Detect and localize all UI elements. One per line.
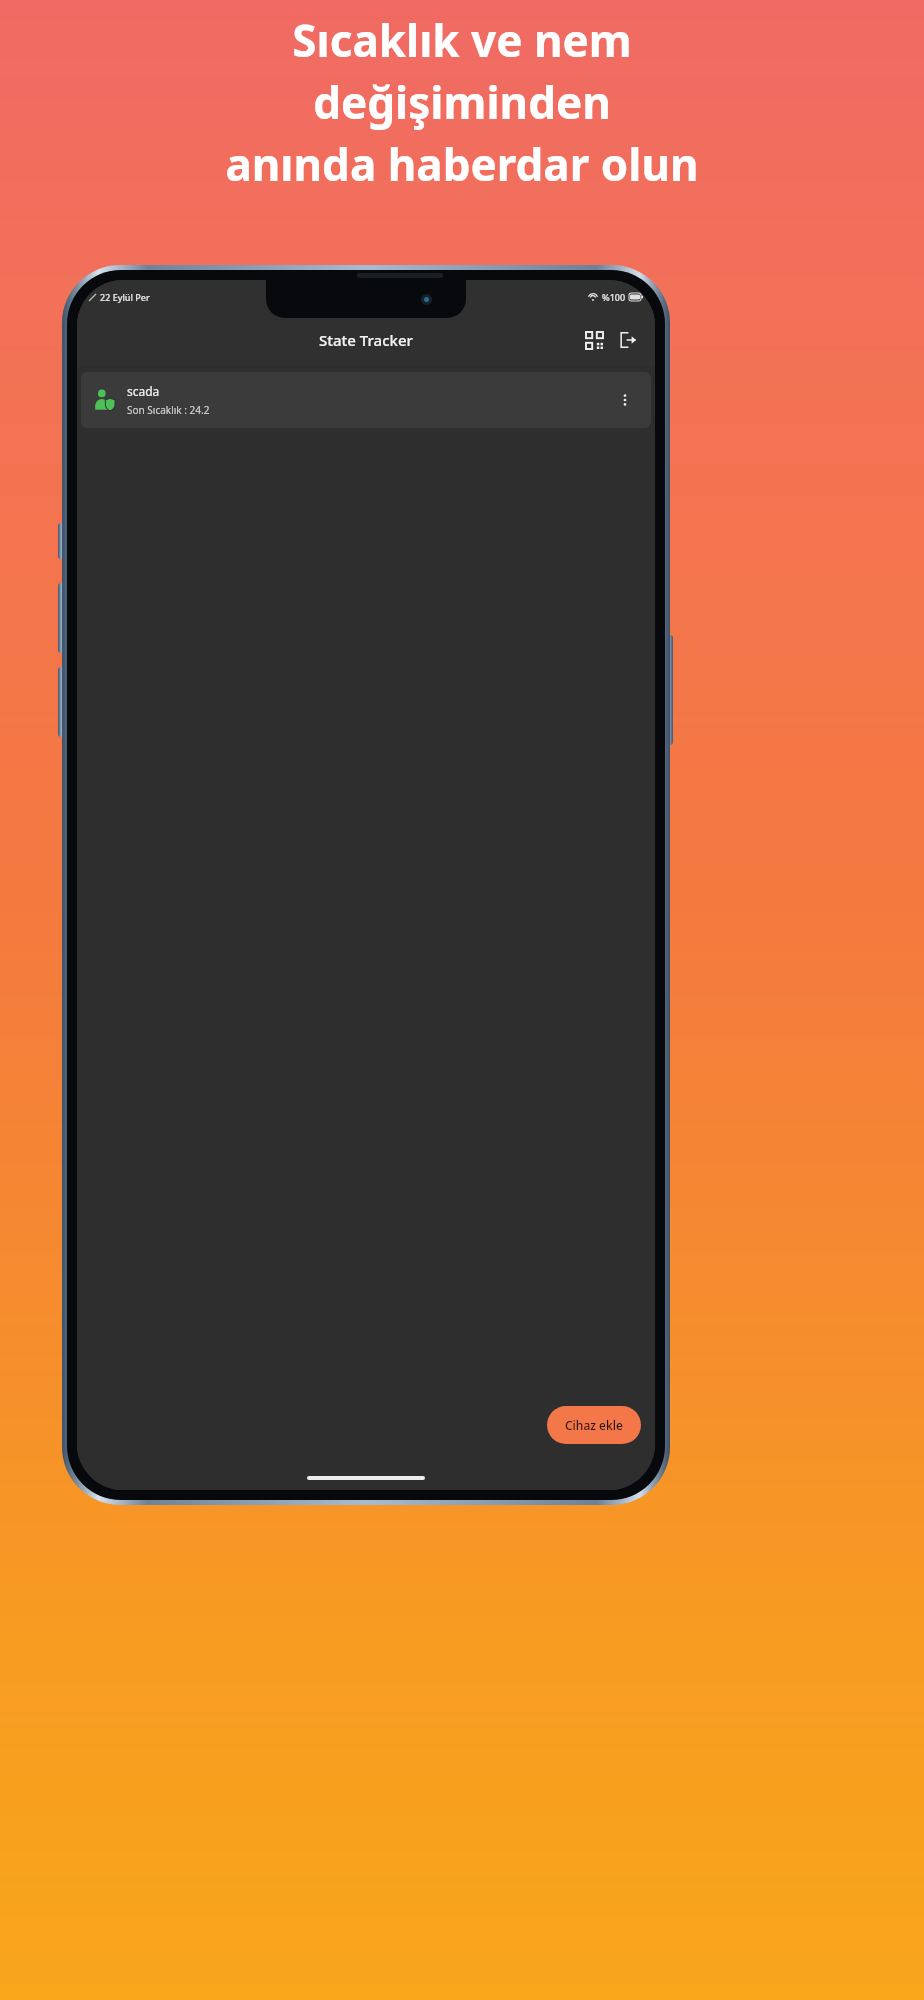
button[interactable]: More options [611,386,639,414]
staticText: %100 [602,291,626,303]
button[interactable]: Log out [611,323,645,357]
staticText: 22 Eylül Per [100,291,150,303]
staticText: Cihaz ekle [565,1417,623,1433]
staticText: değişiminden [24,72,900,132]
button[interactable]: Cihaz ekle [547,1406,641,1444]
button[interactable]: scada [81,372,651,428]
staticText: Son Sıcaklık : 24.2 [127,403,210,417]
staticText: scada [127,383,160,399]
staticText: Sıcaklık ve nem [24,10,900,70]
staticText: State Tracker [319,330,413,350]
button[interactable]: Scan QR code [577,323,611,357]
staticText: anında haberdar olun [24,134,900,194]
